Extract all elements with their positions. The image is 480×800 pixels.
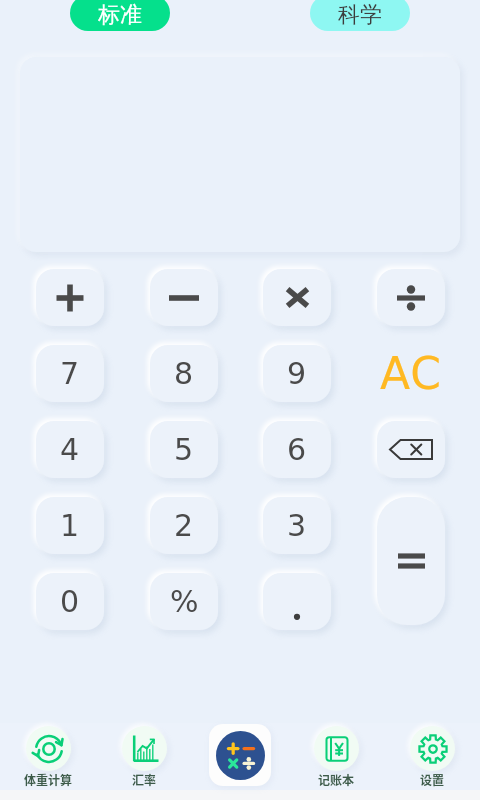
- staticText: 3: [287, 508, 307, 543]
- button[interactable]: 汇率: [96, 723, 192, 800]
- button[interactable]: 6: [263, 421, 331, 478]
- staticText: 6: [287, 432, 307, 467]
- button[interactable]: 设置: [384, 723, 480, 800]
- button[interactable]: 2: [150, 497, 218, 554]
- button[interactable]: 5: [150, 421, 218, 478]
- button[interactable]: [263, 269, 331, 326]
- button[interactable]: 体重计算: [0, 723, 96, 800]
- staticText: 0: [60, 584, 80, 619]
- button[interactable]: 记账本: [288, 723, 384, 800]
- staticText: 汇率: [132, 771, 157, 788]
- button[interactable]: 4: [36, 421, 104, 478]
- button[interactable]: Calculator: [209, 724, 271, 786]
- button[interactable]: 科学: [310, 0, 410, 31]
- button[interactable]: %: [150, 573, 218, 630]
- staticText: 记账本: [318, 771, 355, 788]
- staticText: 5: [174, 432, 194, 467]
- button[interactable]: 3: [263, 497, 331, 554]
- staticText: 科学: [338, 1, 382, 29]
- staticText: 4: [60, 432, 80, 467]
- button[interactable]: 9: [263, 345, 331, 402]
- button[interactable]: 7: [36, 345, 104, 402]
- staticText: 标准: [98, 1, 142, 29]
- staticText: 8: [174, 356, 194, 391]
- staticText: AC: [380, 348, 443, 399]
- button[interactable]: 1: [36, 497, 104, 554]
- button[interactable]: Decimal point: [263, 573, 331, 630]
- staticText: 体重计算: [24, 771, 73, 788]
- button[interactable]: Backspace: [377, 421, 445, 478]
- button[interactable]: Key: [377, 269, 445, 326]
- button[interactable]: 标准: [70, 0, 170, 31]
- button[interactable]: Equals: [377, 497, 445, 625]
- staticText: 设置: [420, 771, 445, 788]
- button[interactable]: Minus: [150, 269, 218, 326]
- staticText: %: [170, 584, 199, 619]
- staticText: 2: [174, 508, 194, 543]
- staticText: 7: [60, 356, 80, 391]
- button[interactable]: 8: [150, 345, 218, 402]
- staticText: 9: [287, 356, 307, 391]
- button[interactable]: Plus: [36, 269, 104, 326]
- button[interactable]: 0: [36, 573, 104, 630]
- button[interactable]: AC: [377, 345, 445, 402]
- staticText: 1: [60, 508, 80, 543]
